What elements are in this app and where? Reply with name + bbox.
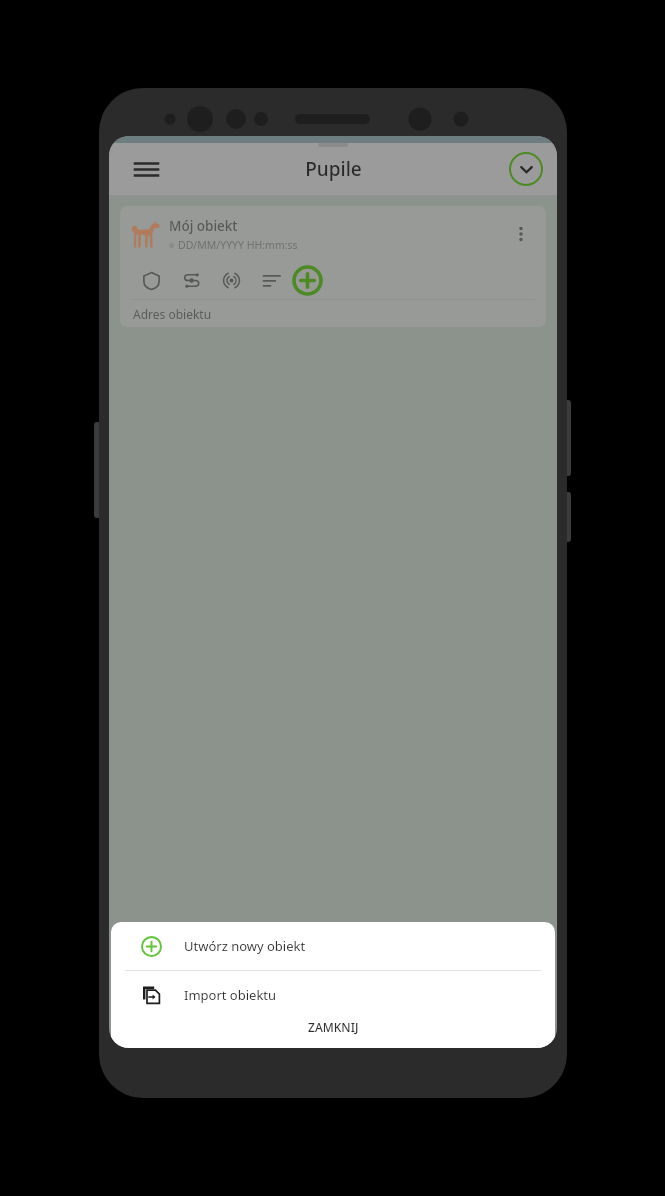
staticText: Adres obiektu [133, 306, 212, 322]
button[interactable]: More options [504, 217, 538, 251]
button[interactable]: Utwórz nowy obiekt [111, 922, 555, 970]
button[interactable]: Add [288, 262, 326, 299]
button[interactable]: Signal [218, 267, 245, 294]
button[interactable]: Expand list [509, 152, 543, 186]
button[interactable]: ZAMKNIJ [111, 1019, 555, 1048]
staticText: Import obiektu [184, 986, 277, 1004]
staticText: Pupile [305, 156, 362, 182]
button[interactable]: Menu [128, 151, 164, 187]
button[interactable]: Sort [258, 267, 285, 294]
staticText: DD/MM/YYYY HH:mm:ss [178, 238, 298, 252]
button[interactable]: Import obiektu [111, 971, 555, 1019]
staticText: Mój obiekt [169, 217, 238, 235]
staticText: ZAMKNIJ [308, 1019, 359, 1035]
button[interactable]: Route [178, 267, 205, 294]
staticText: Utwórz nowy obiekt [184, 937, 306, 955]
button[interactable]: Mój obiekt [120, 206, 546, 327]
button[interactable]: Protection [138, 267, 165, 294]
